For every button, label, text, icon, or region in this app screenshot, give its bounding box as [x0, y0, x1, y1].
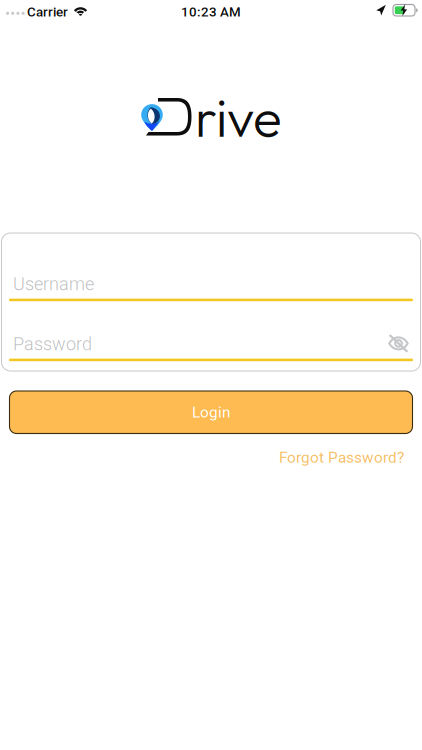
staticText: Username — [13, 273, 94, 295]
staticText: rive — [195, 83, 282, 151]
button[interactable]: Forgot Password? — [270, 447, 404, 468]
staticText: Carrier — [27, 4, 68, 20]
staticText: 10:23 AM — [181, 4, 241, 20]
button[interactable]: Show password — [388, 334, 409, 353]
staticText: Password — [13, 333, 92, 355]
button[interactable]: Login — [9, 391, 412, 433]
staticText: Login — [192, 403, 230, 421]
staticText: Forgot Password? — [279, 448, 404, 466]
